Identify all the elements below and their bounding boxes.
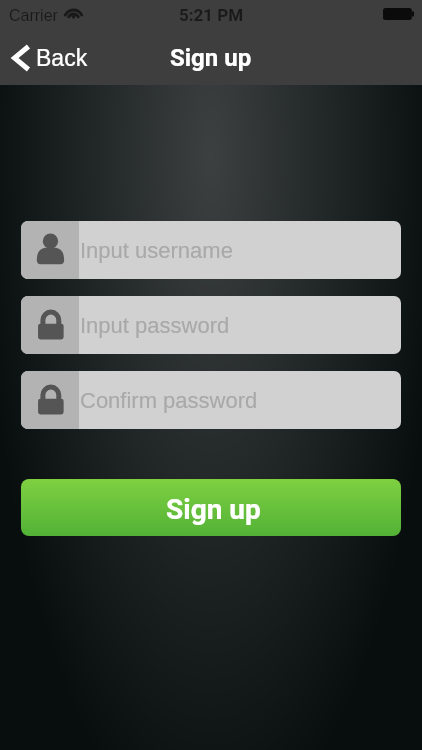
button[interactable]: Confirm password xyxy=(21,371,401,429)
staticText: Input username xyxy=(80,238,233,263)
other: Back xyxy=(11,43,32,73)
staticText: 5:21 PM xyxy=(179,5,244,25)
staticText: Back xyxy=(36,45,88,71)
staticText: Sign up xyxy=(166,493,261,526)
staticText: Input password xyxy=(80,313,230,338)
staticText: Carrier xyxy=(9,7,58,25)
staticText: Sign up xyxy=(170,44,252,72)
staticText: Confirm password xyxy=(80,388,258,413)
button[interactable]: Input username xyxy=(21,221,401,279)
button[interactable]: Input password xyxy=(21,296,401,354)
button[interactable]: Sign up xyxy=(21,479,401,536)
button[interactable]: Back xyxy=(0,33,102,79)
